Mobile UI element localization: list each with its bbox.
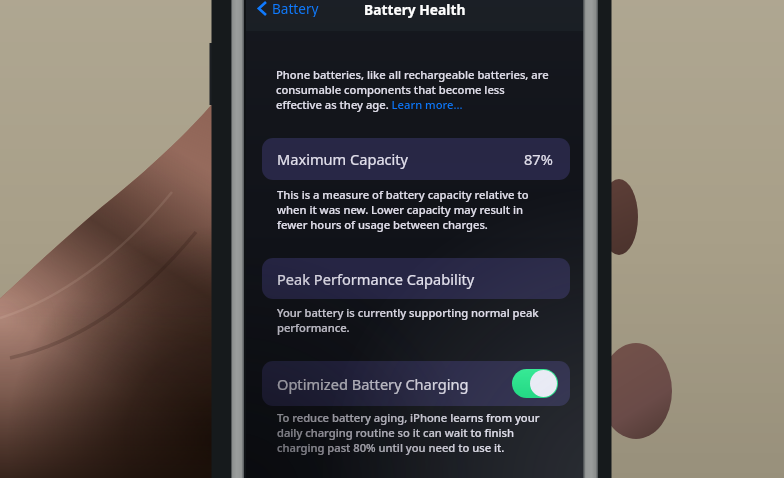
button[interactable]: Maximum Capacity [262, 138, 570, 180]
staticText: This is a measure of battery capacity re… [277, 187, 529, 232]
staticText: Optimized Battery Charging [277, 374, 469, 394]
staticText: Phone batteries, like all rechargeable b… [276, 67, 549, 112]
staticText: Battery Health [364, 0, 466, 19]
staticText: Battery [272, 0, 319, 17]
staticText: Maximum Capacity [277, 149, 409, 169]
button[interactable]: Peak Performance Capability [262, 258, 570, 299]
staticText: Peak Performance Capability [277, 269, 475, 289]
staticText: 87% [524, 149, 553, 169]
staticText: Your battery is currently supporting nor… [277, 305, 539, 335]
staticText: To reduce battery aging, iPhone learns f… [277, 410, 540, 455]
button[interactable]: Optimized Battery Charging toggle [512, 369, 558, 398]
button[interactable]: Optimized Battery Charging [262, 361, 570, 406]
button[interactable]: Battery [255, 0, 321, 17]
